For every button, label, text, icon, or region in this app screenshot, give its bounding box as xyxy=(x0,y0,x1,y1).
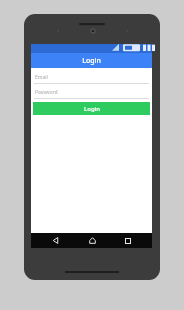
staticText: Login xyxy=(82,56,101,66)
button[interactable]: Password xyxy=(34,87,149,99)
button[interactable]: Recent apps xyxy=(115,233,141,248)
button[interactable]: Login xyxy=(33,102,150,115)
button[interactable]: Back xyxy=(42,233,68,248)
staticText: Login xyxy=(84,105,100,113)
button[interactable]: Home xyxy=(79,233,105,248)
staticText: Password xyxy=(35,89,58,96)
staticText: Email xyxy=(35,74,48,81)
button[interactable]: Email xyxy=(34,72,149,84)
